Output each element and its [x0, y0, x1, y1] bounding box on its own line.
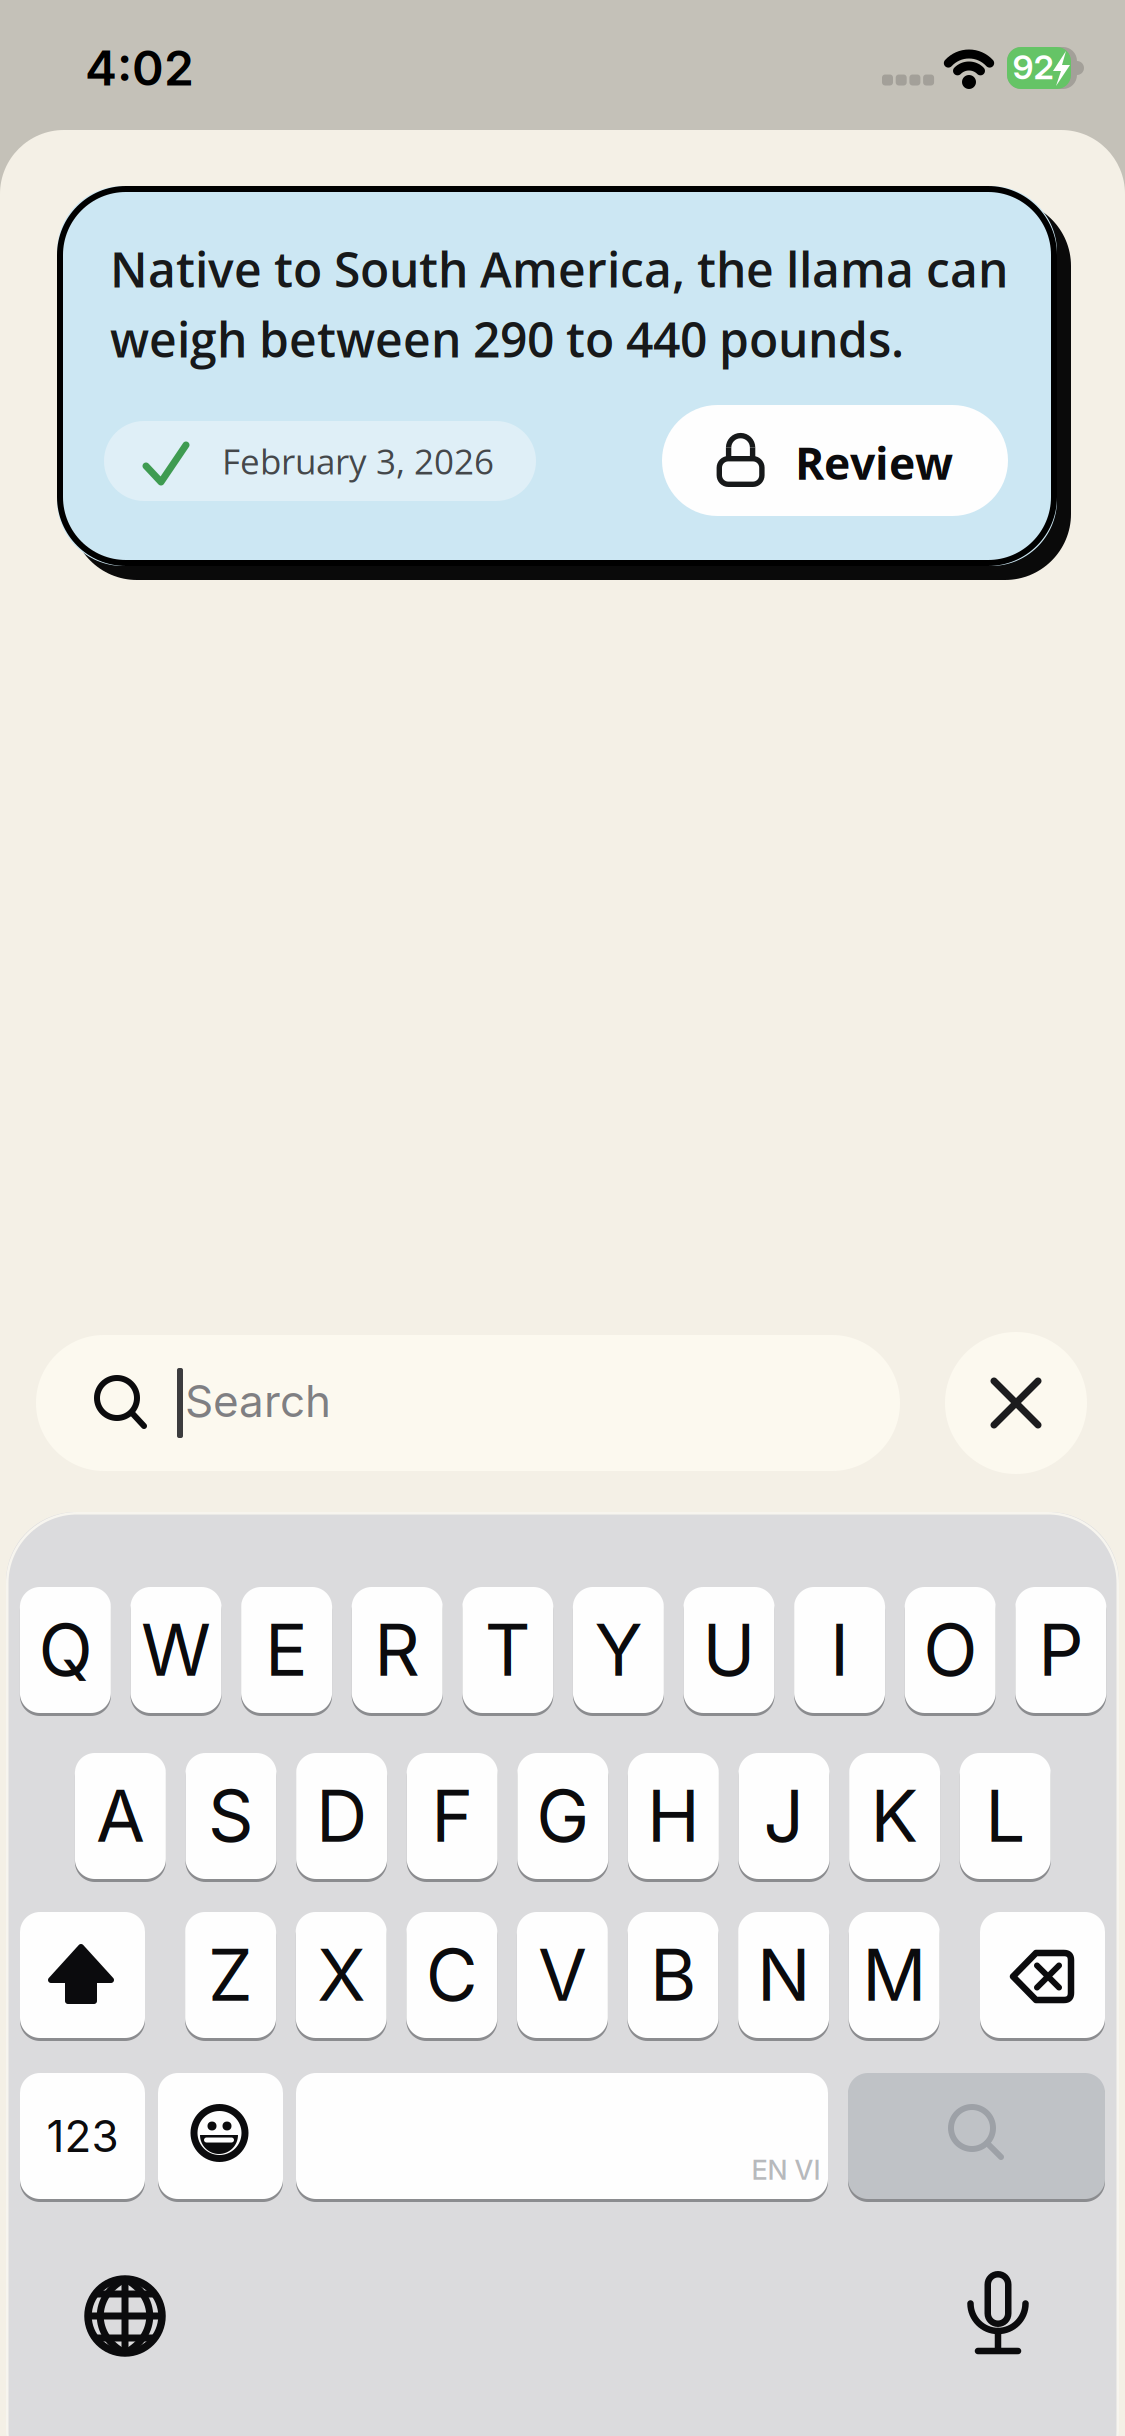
button[interactable]: Dictation — [948, 2262, 1048, 2362]
button[interactable]: Y — [573, 1585, 664, 1715]
button[interactable]: N — [738, 1910, 829, 2040]
button[interactable]: Next keyboard — [75, 2263, 175, 2363]
button[interactable]: K — [849, 1751, 940, 1881]
button[interactable]: X — [296, 1910, 387, 2040]
staticText: February 3, 2026 — [222, 437, 494, 485]
button[interactable]: U — [683, 1585, 774, 1715]
staticText: C — [426, 1932, 478, 2018]
staticText: D — [316, 1773, 367, 1859]
button[interactable]: O — [905, 1585, 996, 1715]
button[interactable]: Close — [945, 1332, 1087, 1474]
staticText: Search — [185, 1374, 331, 1428]
button[interactable]: Q — [20, 1585, 111, 1715]
staticText: F — [431, 1773, 473, 1859]
staticText: H — [647, 1773, 700, 1859]
button[interactable]: Space — [296, 2071, 828, 2201]
staticText: L — [985, 1773, 1025, 1859]
staticText: I — [830, 1607, 849, 1693]
staticText: P — [1038, 1607, 1083, 1693]
staticText: T — [485, 1607, 531, 1693]
staticText: EN VI — [751, 2154, 820, 2186]
button[interactable]: B — [627, 1910, 718, 2040]
button[interactable]: D — [296, 1751, 387, 1881]
button[interactable]: S — [185, 1751, 276, 1881]
button[interactable]: A — [75, 1751, 166, 1881]
button[interactable]: J — [738, 1751, 829, 1881]
button[interactable]: Delete — [980, 1910, 1105, 2040]
staticText: G — [536, 1773, 589, 1859]
staticText: 123 — [46, 2109, 118, 2163]
button[interactable]: L — [960, 1751, 1051, 1881]
staticText: U — [702, 1607, 755, 1693]
button[interactable]: Shift — [20, 1910, 145, 2040]
staticText: 4:02 — [85, 39, 194, 97]
button[interactable]: F — [407, 1751, 498, 1881]
button[interactable]: T — [462, 1585, 553, 1715]
staticText: V — [538, 1932, 587, 2018]
button[interactable]: G — [517, 1751, 608, 1881]
staticText: J — [763, 1773, 804, 1859]
staticText: Z — [208, 1932, 253, 2018]
staticText: R — [374, 1607, 420, 1693]
staticText: O — [923, 1607, 977, 1693]
staticText: W — [141, 1607, 211, 1693]
staticText: Q — [38, 1607, 92, 1693]
staticText: X — [317, 1932, 365, 2018]
staticText: S — [208, 1773, 254, 1859]
staticText: Review — [795, 432, 953, 493]
staticText: K — [871, 1773, 919, 1859]
button[interactable]: W — [130, 1585, 221, 1715]
staticText: weigh between 290 to 440 pounds. — [110, 306, 904, 372]
button[interactable]: Search — [36, 1335, 900, 1471]
button[interactable]: Search — [848, 2071, 1105, 2201]
staticText: N — [757, 1932, 810, 2018]
button[interactable]: P — [1015, 1585, 1106, 1715]
button[interactable]: Z — [185, 1910, 276, 2040]
staticText: A — [96, 1773, 145, 1859]
staticText: M — [862, 1932, 926, 2018]
button[interactable]: V — [517, 1910, 608, 2040]
button[interactable]: R — [352, 1585, 443, 1715]
button[interactable]: M — [849, 1910, 940, 2040]
button[interactable]: Emoji — [158, 2071, 283, 2201]
button[interactable]: I — [794, 1585, 885, 1715]
button[interactable]: Numbers — [20, 2071, 145, 2201]
staticText: E — [265, 1607, 308, 1693]
staticText: B — [650, 1932, 696, 2018]
button[interactable]: Review — [662, 405, 1008, 516]
button[interactable]: E — [241, 1585, 332, 1715]
staticText: Native to South America, the llama can — [110, 236, 1008, 302]
staticText: 92 — [1012, 46, 1053, 87]
button[interactable]: C — [406, 1910, 497, 2040]
button[interactable]: H — [628, 1751, 719, 1881]
staticText: Y — [594, 1607, 642, 1693]
